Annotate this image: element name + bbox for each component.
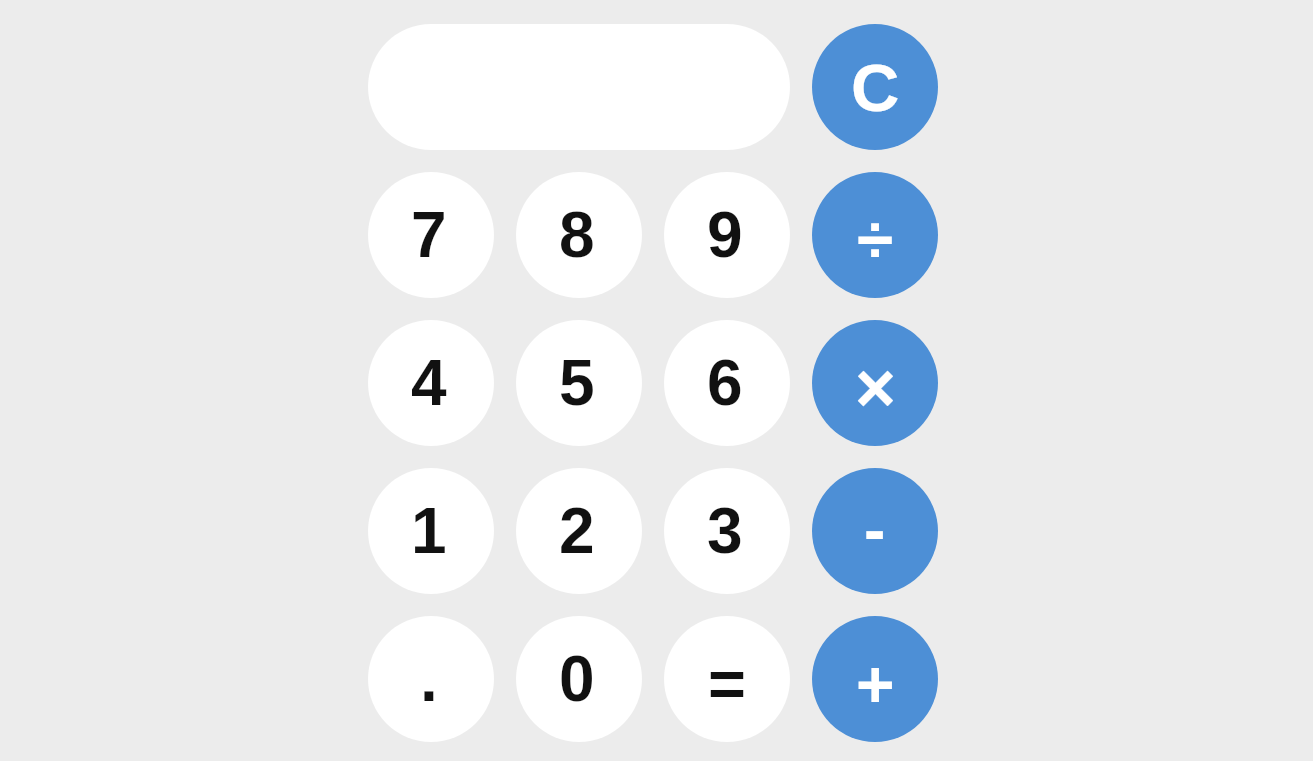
- staticText: .: [420, 643, 438, 715]
- button[interactable]: 2: [516, 468, 642, 594]
- staticText: 2: [559, 495, 595, 567]
- button[interactable]: ×: [812, 320, 938, 446]
- staticText: +: [856, 647, 895, 721]
- button[interactable]: +: [812, 616, 938, 742]
- button[interactable]: 5: [516, 320, 642, 446]
- staticText: =: [708, 647, 746, 720]
- staticText: -: [864, 494, 886, 566]
- button[interactable]: 6: [664, 320, 790, 446]
- button[interactable]: -: [812, 468, 938, 594]
- button[interactable]: 0: [516, 616, 642, 742]
- staticText: C: [851, 50, 900, 125]
- button[interactable]: 9: [664, 172, 790, 298]
- staticText: 0: [559, 643, 595, 715]
- staticText: 4: [411, 347, 447, 419]
- button[interactable]: 4: [368, 320, 494, 446]
- button[interactable]: C: [812, 24, 938, 150]
- button[interactable]: =: [664, 616, 790, 742]
- button[interactable]: 7: [368, 172, 494, 298]
- button[interactable]: 1: [368, 468, 494, 594]
- staticText: 3: [707, 495, 743, 567]
- button[interactable]: 8: [516, 172, 642, 298]
- button[interactable]: .: [368, 616, 494, 742]
- staticText: 9: [707, 199, 743, 271]
- staticText: ÷: [857, 203, 894, 277]
- staticText: 1: [411, 495, 447, 567]
- staticText: 8: [559, 199, 595, 271]
- staticText: 7: [411, 199, 447, 271]
- button[interactable]: ÷: [812, 172, 938, 298]
- staticText: 6: [707, 347, 743, 419]
- staticText: 5: [559, 347, 595, 419]
- button[interactable]: 3: [664, 468, 790, 594]
- staticText: ×: [855, 349, 896, 427]
